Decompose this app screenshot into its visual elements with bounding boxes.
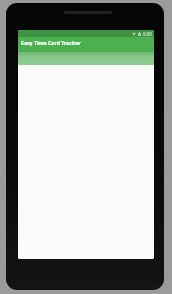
- staticText: 6:00: [143, 31, 152, 37]
- button[interactable]: Easy Time Card Tracker: [18, 37, 154, 52]
- staticText: Easy Time Card Tracker: [21, 39, 81, 46]
